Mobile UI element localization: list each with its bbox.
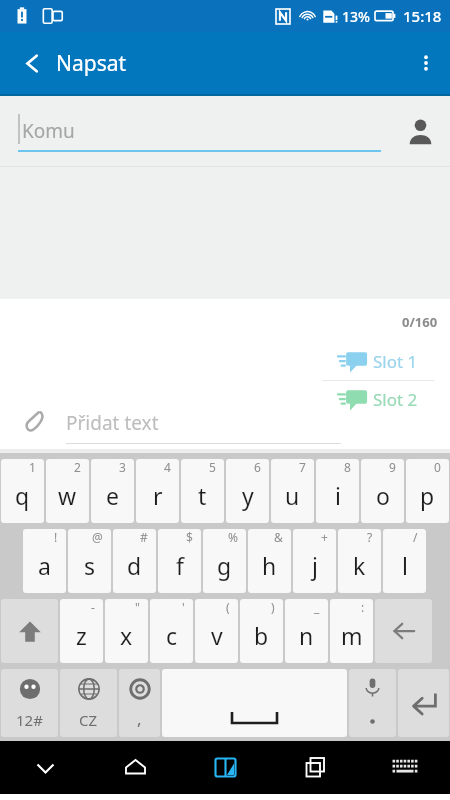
button[interactable]: u xyxy=(271,459,314,523)
staticText: 6 xyxy=(254,459,261,475)
staticText: Napsat xyxy=(56,49,127,78)
staticText: " xyxy=(135,599,140,615)
staticText: c xyxy=(166,620,178,651)
button[interactable]: Change language xyxy=(60,669,117,737)
staticText: + xyxy=(321,529,328,545)
staticText: Slot 2 xyxy=(373,388,418,411)
button[interactable]: b xyxy=(240,599,283,663)
button[interactable]: k xyxy=(338,529,381,593)
staticText: , xyxy=(137,707,142,730)
staticText: b xyxy=(254,620,269,651)
button[interactable]: j xyxy=(293,529,336,593)
staticText: 0 xyxy=(434,459,441,475)
staticText: 0/160 xyxy=(402,313,438,331)
staticText: 4 xyxy=(164,459,171,475)
staticText: g xyxy=(217,550,232,581)
staticText: l xyxy=(402,550,408,581)
button[interactable]: c xyxy=(150,599,193,663)
button[interactable]: l xyxy=(383,529,426,593)
staticText: 1 xyxy=(29,459,36,475)
button[interactable]: z xyxy=(60,599,103,663)
staticText: 15:18 xyxy=(403,6,442,26)
button[interactable]: Symbols xyxy=(1,669,58,737)
button[interactable]: n xyxy=(285,599,328,663)
staticText: w xyxy=(58,480,77,511)
button[interactable]: g xyxy=(203,529,246,593)
button[interactable]: Recent apps xyxy=(270,741,360,794)
button[interactable]: Back xyxy=(8,39,56,87)
staticText: ? xyxy=(367,529,373,545)
staticText: p xyxy=(420,480,435,511)
staticText: 13% xyxy=(342,7,370,26)
staticText: f xyxy=(176,550,184,581)
staticText: ( xyxy=(226,599,230,615)
staticText: 8 xyxy=(344,459,351,475)
staticText: % xyxy=(228,529,238,545)
button[interactable]: m xyxy=(330,599,373,663)
staticText: : xyxy=(361,599,365,615)
button[interactable]: Backspace xyxy=(375,599,432,663)
staticText: 5 xyxy=(209,459,216,475)
button[interactable]: q xyxy=(1,459,44,523)
staticText: 2 xyxy=(74,459,81,475)
button[interactable]: y xyxy=(226,459,269,523)
button[interactable]: Shift xyxy=(1,599,58,663)
staticText: $ xyxy=(186,529,193,545)
staticText: z xyxy=(76,620,87,651)
button[interactable]: d xyxy=(113,529,156,593)
staticText: - xyxy=(91,599,95,615)
button[interactable]: a xyxy=(23,529,66,593)
button[interactable]: Hide keyboard xyxy=(0,741,90,794)
staticText: 12# xyxy=(16,710,43,730)
button[interactable]: Slot 2 xyxy=(338,381,450,418)
button[interactable]: t xyxy=(181,459,224,523)
staticText: ' xyxy=(182,599,185,615)
staticText: q xyxy=(15,480,30,511)
button[interactable]: v xyxy=(195,599,238,663)
staticText: r xyxy=(153,480,163,511)
staticText: d xyxy=(127,550,142,581)
button[interactable]: Attach xyxy=(14,399,56,441)
button[interactable]: e xyxy=(91,459,134,523)
staticText: k xyxy=(353,550,366,581)
staticText: Slot 1 xyxy=(373,350,418,373)
button[interactable]: Home xyxy=(90,741,180,794)
button[interactable]: p xyxy=(406,459,449,523)
staticText: h xyxy=(262,550,277,581)
staticText: m xyxy=(341,620,363,651)
button[interactable]: x xyxy=(105,599,148,663)
button[interactable]: Pick contact xyxy=(396,107,444,155)
button[interactable]: r xyxy=(136,459,179,523)
button[interactable]: f xyxy=(158,529,201,593)
button[interactable]: Slot 1 xyxy=(338,343,450,380)
button[interactable]: Enter xyxy=(398,669,449,737)
staticText: t xyxy=(198,480,207,511)
staticText: u xyxy=(285,480,300,511)
staticText: j xyxy=(312,550,318,581)
staticText: @ xyxy=(92,529,103,545)
button[interactable]: More options xyxy=(402,39,450,87)
staticText: # xyxy=(140,529,148,545)
button[interactable]: s xyxy=(68,529,111,593)
staticText: 7 xyxy=(299,459,306,475)
staticText: 9 xyxy=(389,459,396,475)
staticText: v xyxy=(211,620,223,651)
button[interactable]: Voice input xyxy=(349,669,396,737)
button[interactable]: Space xyxy=(162,669,347,737)
staticText: s xyxy=(84,550,96,581)
button[interactable]: Switch keyboard xyxy=(360,741,450,794)
button[interactable]: o xyxy=(361,459,404,523)
staticText: n xyxy=(299,620,314,651)
staticText: a xyxy=(38,550,51,581)
staticText: / xyxy=(413,529,418,545)
button[interactable]: Settings xyxy=(119,669,160,737)
button[interactable]: i xyxy=(316,459,359,523)
button[interactable]: h xyxy=(248,529,291,593)
button[interactable]: Split screen xyxy=(180,741,270,794)
staticText: o xyxy=(376,480,390,511)
button[interactable]: w xyxy=(46,459,89,523)
staticText: _ xyxy=(314,599,320,615)
staticText: ) xyxy=(271,599,275,615)
staticText: & xyxy=(274,529,283,545)
staticText: x xyxy=(120,620,133,651)
